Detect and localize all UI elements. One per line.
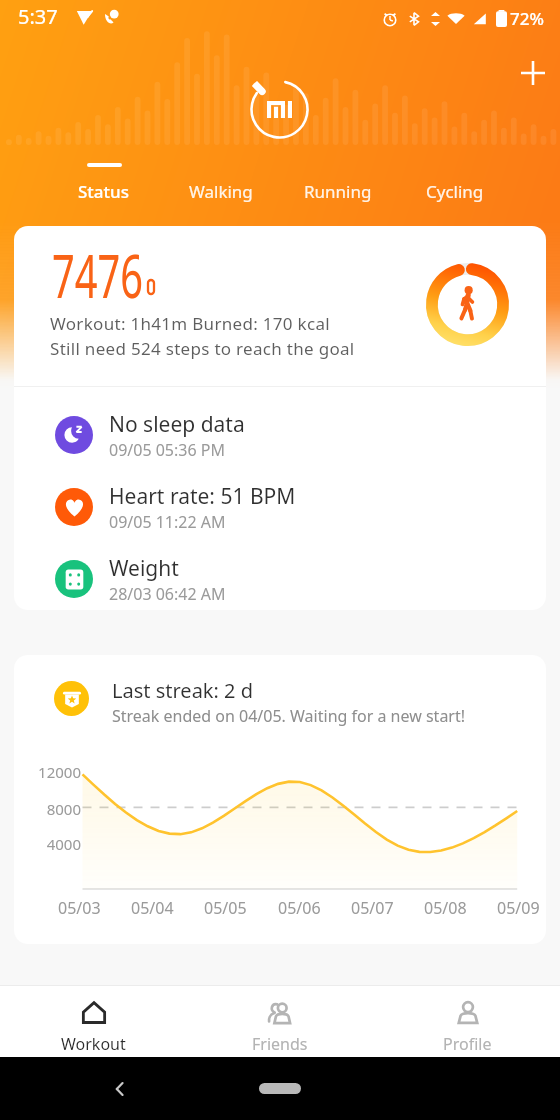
button[interactable]: Workout: [0, 985, 186, 1057]
staticText: 05/06: [278, 897, 321, 919]
staticText: Workout: [61, 1033, 126, 1055]
staticText: Still need 524 steps to reach the goal: [50, 337, 355, 360]
staticText: 05/03: [58, 897, 101, 919]
staticText: Status: [78, 180, 130, 203]
button[interactable]: 7476: [14, 226, 546, 386]
staticText: Workout: 1h41m Burned: 170 kcal: [50, 312, 330, 335]
staticText: Walking: [189, 180, 253, 203]
staticText: 12000: [14, 762, 81, 782]
staticText: Profile: [443, 1033, 492, 1055]
staticText: 5:37: [18, 3, 58, 30]
button[interactable]: Friends: [187, 985, 373, 1057]
button[interactable]: Mi Band: [243, 73, 316, 146]
staticText: 7476: [52, 233, 143, 316]
staticText: 8000: [14, 799, 81, 819]
staticText: No sleep data: [109, 410, 245, 439]
button[interactable]: Status: [59, 163, 149, 213]
staticText: Heart rate: 51 BPM: [109, 482, 296, 511]
staticText: 4000: [14, 834, 81, 854]
staticText: 05/08: [424, 897, 467, 919]
staticText: 28/03 06:42 AM: [109, 583, 226, 605]
staticText: Running: [304, 180, 372, 203]
button[interactable]: Cycling: [410, 163, 500, 213]
staticText: Friends: [252, 1033, 308, 1055]
staticText: 05/07: [351, 897, 394, 919]
staticText: 09/05 05:36 PM: [109, 439, 225, 461]
staticText: Cycling: [426, 180, 484, 203]
staticText: 05/04: [131, 897, 174, 919]
button[interactable]: Heart rate: 51 BPM: [14, 473, 546, 541]
staticText: 05/09: [497, 897, 540, 919]
button[interactable]: Profile: [374, 985, 560, 1057]
button[interactable]: Add: [510, 50, 556, 96]
button[interactable]: Weight: [14, 545, 546, 610]
button[interactable]: Last streak: 2 d: [14, 655, 546, 944]
staticText: Streak ended on 04/05. Waiting for a new…: [112, 705, 466, 727]
button[interactable]: Running: [293, 163, 383, 213]
button[interactable]: Back: [100, 1069, 140, 1109]
button[interactable]: No sleep data: [14, 401, 546, 469]
staticText: 05/05: [204, 897, 247, 919]
button[interactable]: Walking: [176, 163, 266, 213]
staticText: 09/05 11:22 AM: [109, 511, 226, 533]
staticText: Weight: [109, 554, 179, 583]
staticText: Last streak: 2 d: [112, 677, 254, 704]
staticText: 72%: [510, 7, 544, 30]
